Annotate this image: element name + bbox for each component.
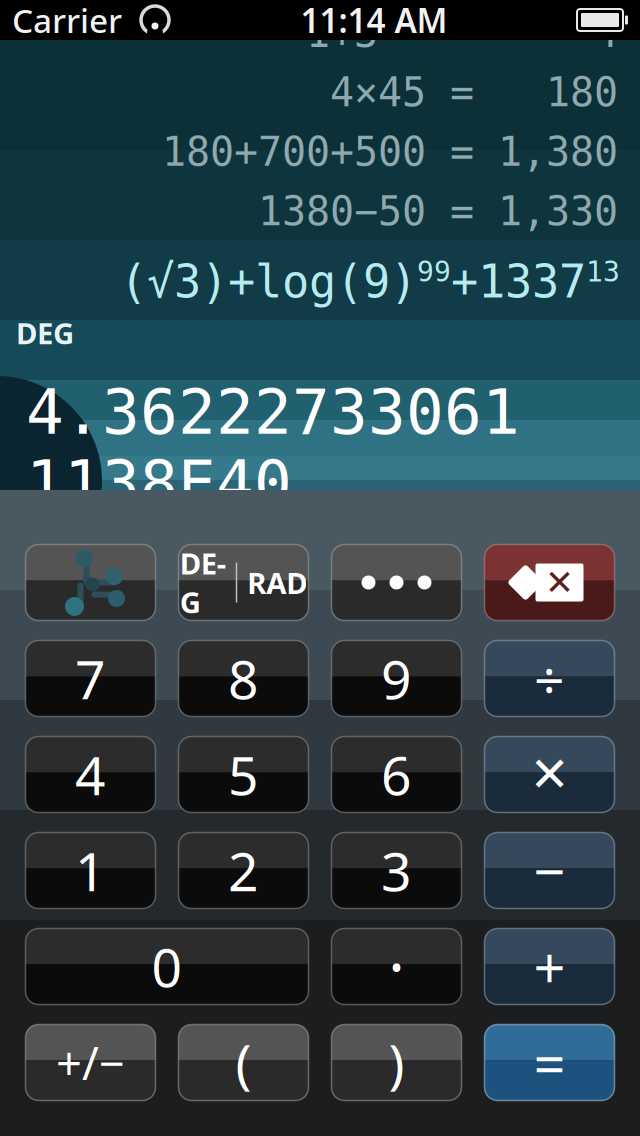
button[interactable]: 2 bbox=[178, 832, 308, 908]
staticText: 4 bbox=[75, 739, 106, 810]
staticText: 4.36222733061 1138E40 bbox=[26, 376, 520, 519]
staticText: 6 bbox=[381, 739, 412, 810]
button[interactable]: Scientific functions bbox=[25, 544, 155, 620]
staticText: = bbox=[426, 129, 498, 175]
button[interactable]: DEG bbox=[178, 544, 308, 620]
staticText: ) bbox=[388, 1027, 404, 1098]
button[interactable]: 9 bbox=[331, 640, 461, 716]
staticText: DEG bbox=[16, 313, 74, 352]
staticText: 4×45 bbox=[330, 70, 426, 115]
button[interactable]: ÷ bbox=[484, 640, 614, 716]
button[interactable]: More options bbox=[331, 544, 461, 620]
staticText: 1+3 bbox=[306, 10, 378, 56]
staticText: RAD bbox=[247, 563, 307, 602]
staticText: 4 bbox=[450, 10, 618, 56]
staticText: 180+700+500 bbox=[162, 129, 426, 175]
staticText: ( bbox=[235, 1027, 251, 1098]
button[interactable]: 0 bbox=[25, 928, 308, 1004]
staticText: = bbox=[533, 1025, 565, 1100]
staticText: 99 bbox=[417, 256, 451, 288]
staticText: 1380−50 bbox=[258, 189, 426, 234]
staticText: 11:14 AM bbox=[300, 0, 447, 42]
staticText: +1337 bbox=[451, 256, 586, 307]
staticText: 1 bbox=[16, 521, 33, 560]
staticText: • bbox=[390, 943, 403, 989]
staticText: 1,330 bbox=[498, 189, 618, 234]
button[interactable]: 3 bbox=[331, 832, 461, 908]
staticText: + bbox=[533, 929, 565, 1004]
button[interactable]: Delete bbox=[484, 544, 614, 620]
staticText: ✕ bbox=[529, 747, 569, 802]
staticText: ✕ bbox=[545, 563, 574, 602]
button[interactable]: + bbox=[484, 928, 614, 1004]
staticText: 13 bbox=[586, 256, 620, 288]
staticText: − bbox=[533, 833, 565, 908]
button[interactable]: − bbox=[484, 832, 614, 908]
staticText: Carrier bbox=[12, 0, 122, 42]
staticText: 3 bbox=[381, 835, 412, 906]
staticText: 1,380 bbox=[498, 129, 618, 175]
staticText: 180 bbox=[498, 70, 618, 115]
staticText: = bbox=[378, 10, 450, 56]
button[interactable]: 5 bbox=[178, 736, 308, 812]
button[interactable]: ) bbox=[331, 1024, 461, 1100]
button[interactable]: • bbox=[331, 928, 461, 1004]
staticText: 2 bbox=[228, 835, 259, 906]
staticText: 8 bbox=[228, 643, 259, 714]
button[interactable]: ✕ bbox=[484, 736, 614, 812]
staticText: 9 bbox=[381, 643, 412, 714]
staticText: = bbox=[426, 189, 498, 234]
staticText bbox=[122, 0, 131, 42]
button[interactable]: = bbox=[484, 1024, 614, 1100]
button[interactable]: 4 bbox=[25, 736, 155, 812]
staticText: DEG bbox=[180, 543, 226, 621]
button[interactable]: 8 bbox=[178, 640, 308, 716]
staticText: ÷ bbox=[534, 643, 565, 714]
staticText: (√3)+log(9) bbox=[120, 256, 417, 307]
button[interactable]: 7 bbox=[25, 640, 155, 716]
button[interactable]: +/− bbox=[25, 1024, 155, 1100]
staticText: 7 bbox=[75, 643, 106, 714]
button[interactable]: 1 bbox=[25, 832, 155, 908]
staticText: 5 bbox=[228, 739, 259, 810]
button[interactable]: 6 bbox=[331, 736, 461, 812]
staticText: = bbox=[426, 70, 498, 115]
staticText: +/− bbox=[56, 1032, 125, 1093]
staticText: 0 bbox=[151, 931, 182, 1002]
staticText: 1 bbox=[75, 835, 106, 906]
button[interactable]: ( bbox=[178, 1024, 308, 1100]
